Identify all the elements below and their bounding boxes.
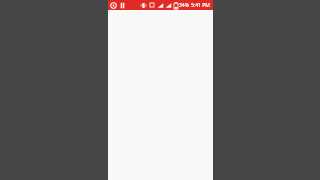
- staticText: 5:41: [191, 2, 201, 9]
- other: Notification: [119, 2, 126, 9]
- other: Wifi off: [149, 2, 155, 8]
- other: Location active: [110, 2, 117, 9]
- other: Vibrate mode: [140, 2, 147, 9]
- other: Signal strength SIM 1: [157, 2, 164, 9]
- staticText: 34%: [179, 2, 189, 9]
- other: Battery 34 percent: [174, 2, 178, 9]
- staticText: PM: [202, 2, 210, 9]
- button[interactable]: Location active: [108, 0, 213, 10]
- other: Signal strength SIM 2: [165, 2, 172, 9]
